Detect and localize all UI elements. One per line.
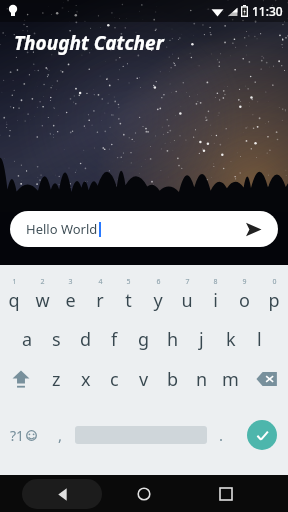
button[interactable]: . [207,399,236,471]
button[interactable]: 8 [201,271,230,319]
button[interactable]: Recents [208,476,244,512]
button[interactable]: 7 [172,271,201,319]
button[interactable]: 4 [85,271,114,319]
button[interactable]: Hello World [10,211,278,247]
button[interactable]: d [71,319,100,359]
button[interactable]: l [245,319,274,359]
button[interactable]: j [187,319,216,359]
staticText: h [167,327,179,352]
staticText: 8 [213,277,218,287]
staticText: k [226,327,236,352]
staticText: p [268,288,280,313]
staticText: 4 [98,277,103,287]
staticText: u [181,288,193,313]
staticText: q [8,288,20,313]
staticText: o [239,288,250,313]
button[interactable]: v [129,359,158,399]
staticText: 7 [185,277,190,287]
button[interactable]: 3 [56,271,85,319]
button[interactable]: Done [247,420,277,450]
staticText: 3 [68,277,73,287]
button[interactable]: , [46,399,75,471]
button[interactable]: a [13,319,42,359]
staticText: m [222,367,239,392]
staticText: 6 [156,277,161,287]
button[interactable]: m [216,359,245,399]
staticText: 5 [126,277,131,287]
button[interactable]: Home [126,476,162,512]
button[interactable]: 1 [0,271,28,319]
button[interactable]: x [71,359,100,399]
button[interactable]: s [42,319,71,359]
button[interactable]: 9 [230,271,259,319]
button[interactable]: 0 [259,271,288,319]
staticText: y [153,288,163,313]
button[interactable]: ?1 [0,399,46,471]
staticText: g [138,327,150,352]
staticText: Thought Catcher [14,30,164,56]
button[interactable]: z [42,359,71,399]
staticText: x [81,367,91,392]
button[interactable]: Back [22,479,102,509]
button[interactable]: Shift [0,359,42,399]
staticText: t [125,288,132,313]
button[interactable]: n [187,359,216,399]
staticText: b [167,367,179,392]
staticText: v [139,367,149,392]
staticText: a [22,327,33,352]
staticText: i [213,288,218,313]
staticText: l [257,327,262,352]
button[interactable]: 5 [114,271,143,319]
staticText: . [219,425,224,445]
staticText: 2 [40,277,45,287]
button[interactable]: Backspace [245,359,288,399]
staticText: 0 [272,277,277,287]
button[interactable]: 6 [143,271,172,319]
button[interactable]: k [216,319,245,359]
staticText: z [52,367,61,392]
button[interactable]: c [100,359,129,399]
staticText: j [199,327,204,352]
button[interactable]: f [100,319,129,359]
staticText: f [111,327,118,352]
button[interactable]: Send [240,216,266,242]
staticText: e [65,288,76,313]
staticText: 1 [12,277,17,287]
staticText: n [196,367,208,392]
staticText: Hello World [26,220,98,238]
button[interactable]: Space [75,399,207,471]
staticText: ?1 [10,426,25,445]
staticText: w [35,288,50,313]
button[interactable]: g [129,319,158,359]
button[interactable]: 2 [28,271,56,319]
staticText: 9 [242,277,247,287]
staticText: 11:30 [252,3,283,19]
staticText: r [96,288,104,313]
staticText: , [58,425,63,445]
button[interactable]: h [158,319,187,359]
staticText: c [110,367,119,392]
button[interactable]: b [158,359,187,399]
staticText: d [80,327,92,352]
staticText: s [52,327,61,352]
